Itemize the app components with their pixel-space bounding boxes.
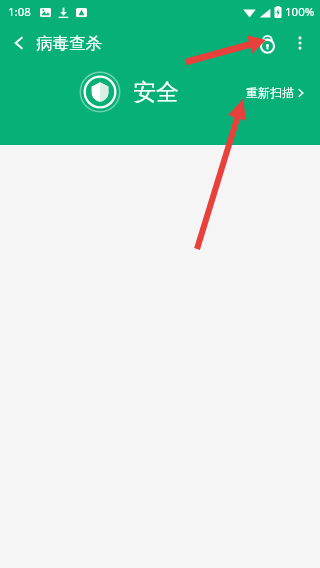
staticText: 100% xyxy=(285,4,315,20)
button[interactable]: Lock xyxy=(250,26,284,60)
button[interactable]: Back xyxy=(0,24,112,62)
button[interactable]: More options xyxy=(284,27,316,59)
staticText: 安全 xyxy=(133,78,179,107)
staticText: 病毒查杀 xyxy=(36,33,102,54)
other: Back xyxy=(12,36,26,50)
staticText: 1:08 xyxy=(8,4,31,20)
staticText: 重新扫描 xyxy=(246,85,294,100)
button[interactable]: 重新扫描 xyxy=(236,77,314,108)
